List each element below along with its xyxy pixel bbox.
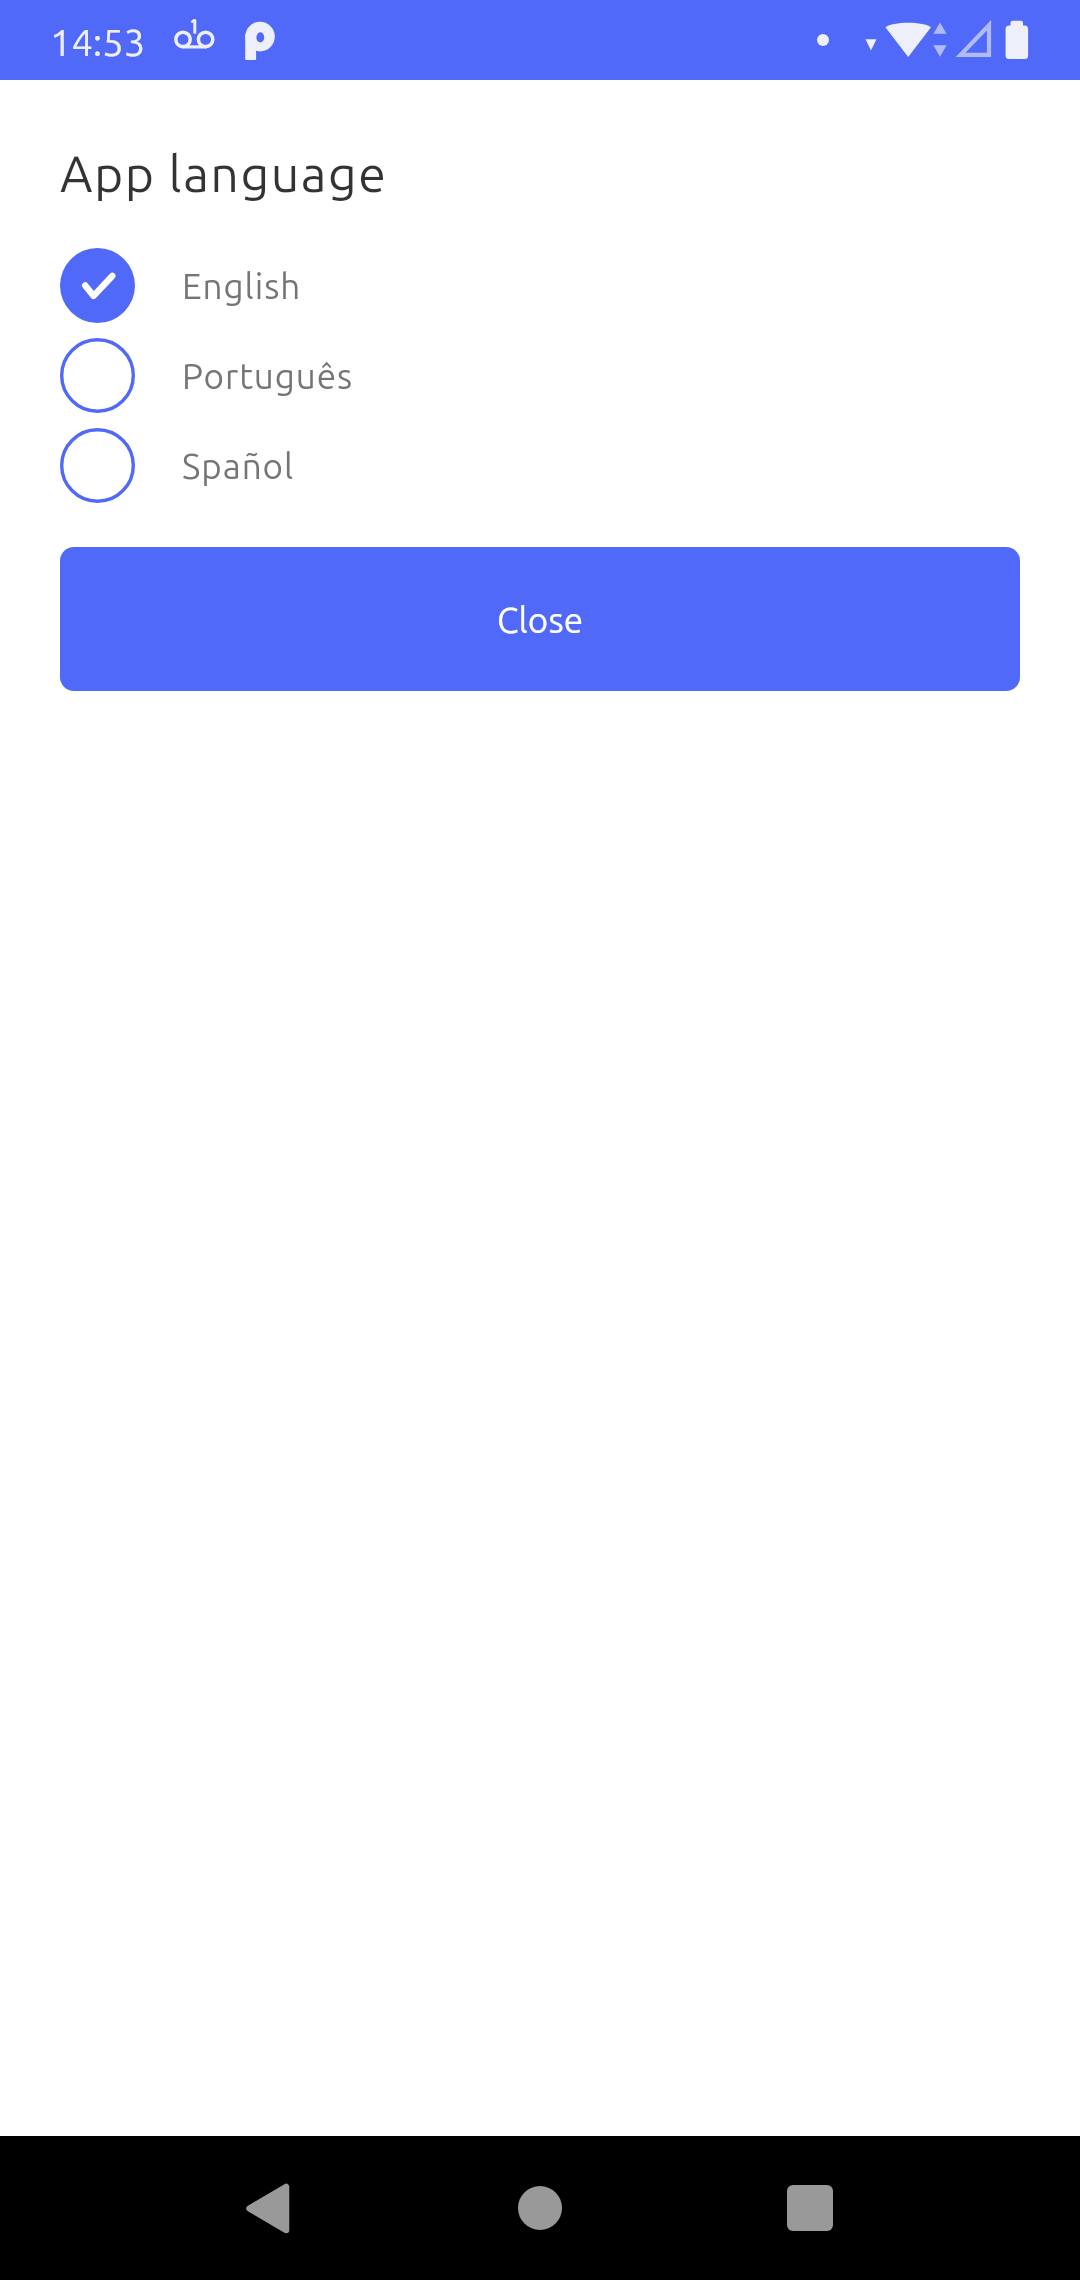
staticText: Close [497,600,584,639]
staticText: Português [182,356,354,395]
button[interactable]: English [0,240,1080,330]
button[interactable]: Spañol [0,420,1080,510]
staticText: 14:53 [50,21,146,64]
staticText: English [182,266,302,305]
button[interactable]: Recent apps [750,2148,870,2268]
staticText: Spañol [182,446,295,485]
button[interactable]: Home [480,2148,600,2268]
button[interactable]: Back [207,2148,327,2268]
staticText: App language [60,145,388,201]
button[interactable]: Português [0,330,1080,420]
button[interactable]: Close [60,547,1020,691]
